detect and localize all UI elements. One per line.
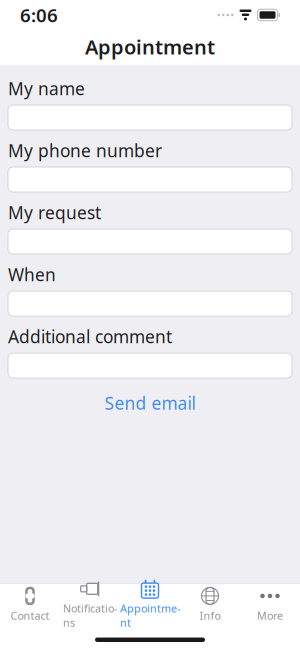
staticText: My request (8, 201, 101, 224)
staticText: Appointment (120, 601, 180, 630)
button[interactable]: Contact (0, 587, 60, 621)
button[interactable]: Info (180, 587, 240, 621)
button[interactable]: Notifications (60, 587, 120, 621)
staticText: Contact (10, 608, 49, 623)
button[interactable] (8, 229, 292, 254)
button[interactable]: More (240, 587, 300, 621)
staticText: Notifications (63, 601, 117, 630)
button[interactable] (8, 291, 292, 316)
button[interactable] (8, 353, 292, 378)
staticText: Additional comment (8, 325, 172, 348)
staticText: More (257, 608, 283, 623)
button[interactable] (8, 167, 292, 192)
staticText: Info (199, 608, 220, 623)
button[interactable]: Appointment (120, 587, 180, 621)
staticText: 6:06 (20, 3, 58, 27)
button[interactable] (8, 105, 292, 130)
staticText: Appointment (85, 33, 215, 60)
button[interactable]: Send email (8, 391, 292, 415)
staticText: When (8, 263, 56, 286)
staticText: My phone number (8, 139, 162, 162)
staticText: Send email (104, 392, 195, 415)
staticText: My name (8, 77, 85, 100)
